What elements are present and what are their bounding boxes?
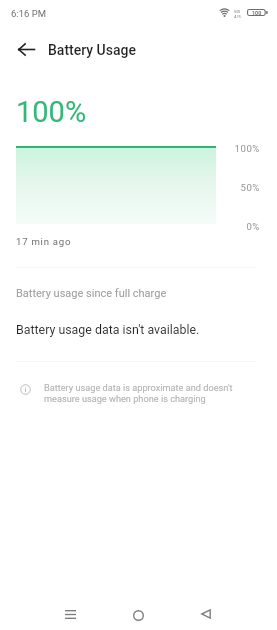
staticText: 0% [180, 221, 260, 232]
button[interactable]: Recent apps [48, 592, 92, 630]
staticText: 17 min ago [16, 236, 72, 247]
staticText: Battery usage data isn't available. [16, 322, 200, 337]
staticText: 100% [16, 95, 87, 129]
button[interactable]: Back [184, 592, 228, 630]
staticText: 4/5 [234, 14, 241, 19]
button[interactable]: Home [116, 593, 160, 630]
staticText: 100% [180, 143, 260, 154]
staticText: Battery usage data is approximate and do… [44, 382, 238, 404]
button[interactable]: Back [8, 31, 44, 67]
staticText: 50| [234, 9, 241, 14]
staticText: 50% [180, 182, 260, 193]
staticText: 6:16 PM [11, 8, 46, 19]
staticText: Battery usage since full charge [16, 287, 167, 300]
staticText: Battery Usage [48, 42, 136, 58]
staticText: 100 [252, 10, 262, 16]
